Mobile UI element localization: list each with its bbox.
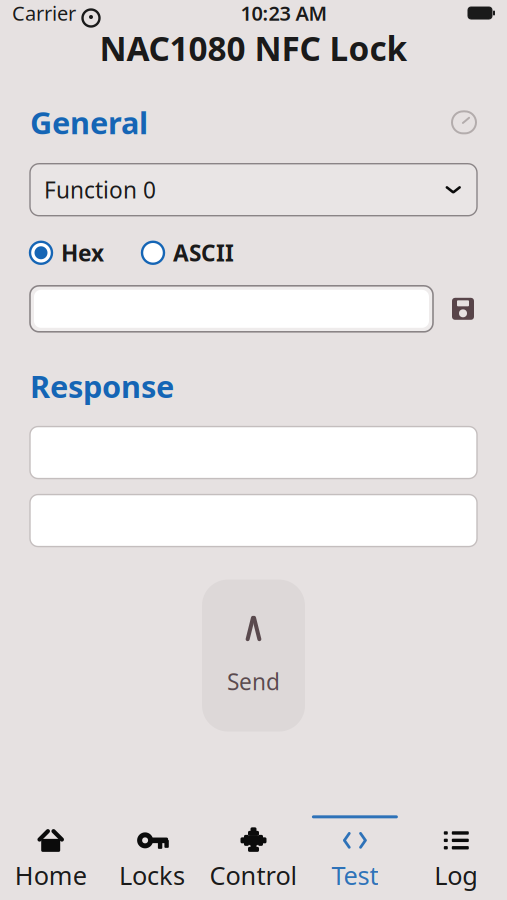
staticText: Home: [15, 858, 87, 892]
button[interactable]: ASCII: [142, 238, 234, 268]
button[interactable]: Test: [304, 815, 406, 892]
staticText: Log: [434, 858, 478, 892]
button[interactable]: Hex: [30, 238, 104, 268]
button[interactable]: Locks: [101, 815, 203, 892]
button[interactable]: Log: [406, 815, 507, 892]
button[interactable]: Diagnostics: [451, 110, 477, 134]
button[interactable]: Control: [203, 815, 304, 892]
staticText: Locks: [119, 858, 185, 892]
staticText: 10:23 AM: [240, 0, 327, 26]
staticText: Control: [209, 858, 297, 892]
staticText: General: [30, 102, 148, 143]
staticText: NAC1080 NFC Lock: [99, 26, 407, 70]
staticText: Carrier: [12, 0, 76, 26]
button[interactable]: Save: [433, 297, 477, 321]
staticText: ASCII: [173, 238, 234, 268]
staticText: Hex: [61, 238, 104, 268]
staticText: Test: [331, 858, 378, 892]
staticText: Send: [227, 666, 280, 697]
button[interactable]: Function 0: [30, 164, 477, 216]
button[interactable]: Send: [202, 580, 305, 732]
staticText: Function 0: [44, 175, 156, 205]
button[interactable]: Home: [0, 815, 101, 892]
staticText: Response: [30, 366, 174, 406]
